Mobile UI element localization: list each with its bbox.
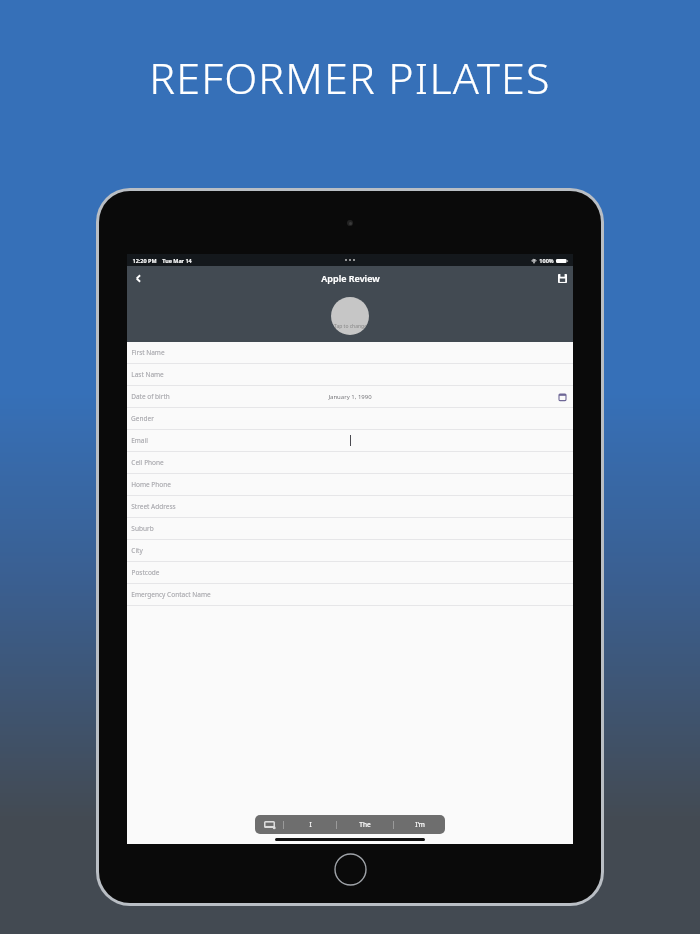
button[interactable]: Email <box>127 430 573 452</box>
button[interactable]: Save <box>551 267 573 289</box>
button[interactable]: Last Name <box>127 364 573 386</box>
staticText: 12:20 PM <box>132 257 157 264</box>
staticText: The <box>359 820 371 829</box>
staticText: Email <box>131 436 148 445</box>
button[interactable]: Home Phone <box>127 474 573 496</box>
staticText: Home Phone <box>131 480 171 489</box>
staticText: Postcode <box>131 568 160 577</box>
staticText: I <box>309 820 312 829</box>
staticText: Gender <box>131 414 154 423</box>
staticText: Suburb <box>131 524 154 533</box>
button[interactable]: Keyboard <box>255 815 283 834</box>
staticText: REFORMER PILATES <box>149 48 551 107</box>
button[interactable]: Date of birth <box>127 386 573 408</box>
staticText: Date of birth <box>131 392 170 401</box>
button[interactable]: City <box>127 540 573 562</box>
staticText: Cell Phone <box>131 458 164 467</box>
button[interactable]: I'm <box>394 815 445 834</box>
staticText: First Name <box>131 348 165 357</box>
button[interactable]: Gender <box>127 408 573 430</box>
staticText: City <box>131 546 143 555</box>
staticText: I'm <box>415 820 425 829</box>
staticText: Emergency Contact Name <box>131 590 211 599</box>
button[interactable]: Street Address <box>127 496 573 518</box>
staticText: Apple Review <box>321 272 380 284</box>
button[interactable]: I <box>284 815 336 834</box>
button[interactable]: First Name <box>127 342 573 364</box>
button[interactable]: Pick date <box>555 390 569 404</box>
staticText: January 1, 1990 <box>328 393 372 401</box>
staticText: Tue Mar 14 <box>162 257 192 264</box>
button[interactable]: Change profile photo <box>331 297 369 335</box>
staticText: Tap to change <box>334 323 367 330</box>
staticText: 100% <box>539 257 554 264</box>
staticText: Street Address <box>131 502 176 511</box>
button[interactable]: Suburb <box>127 518 573 540</box>
staticText: Last Name <box>131 370 164 379</box>
button[interactable]: Cell Phone <box>127 452 573 474</box>
button[interactable]: Emergency Contact Name <box>127 584 573 606</box>
button[interactable]: Back <box>127 267 149 289</box>
button[interactable]: Postcode <box>127 562 573 584</box>
button[interactable]: The <box>337 815 393 834</box>
